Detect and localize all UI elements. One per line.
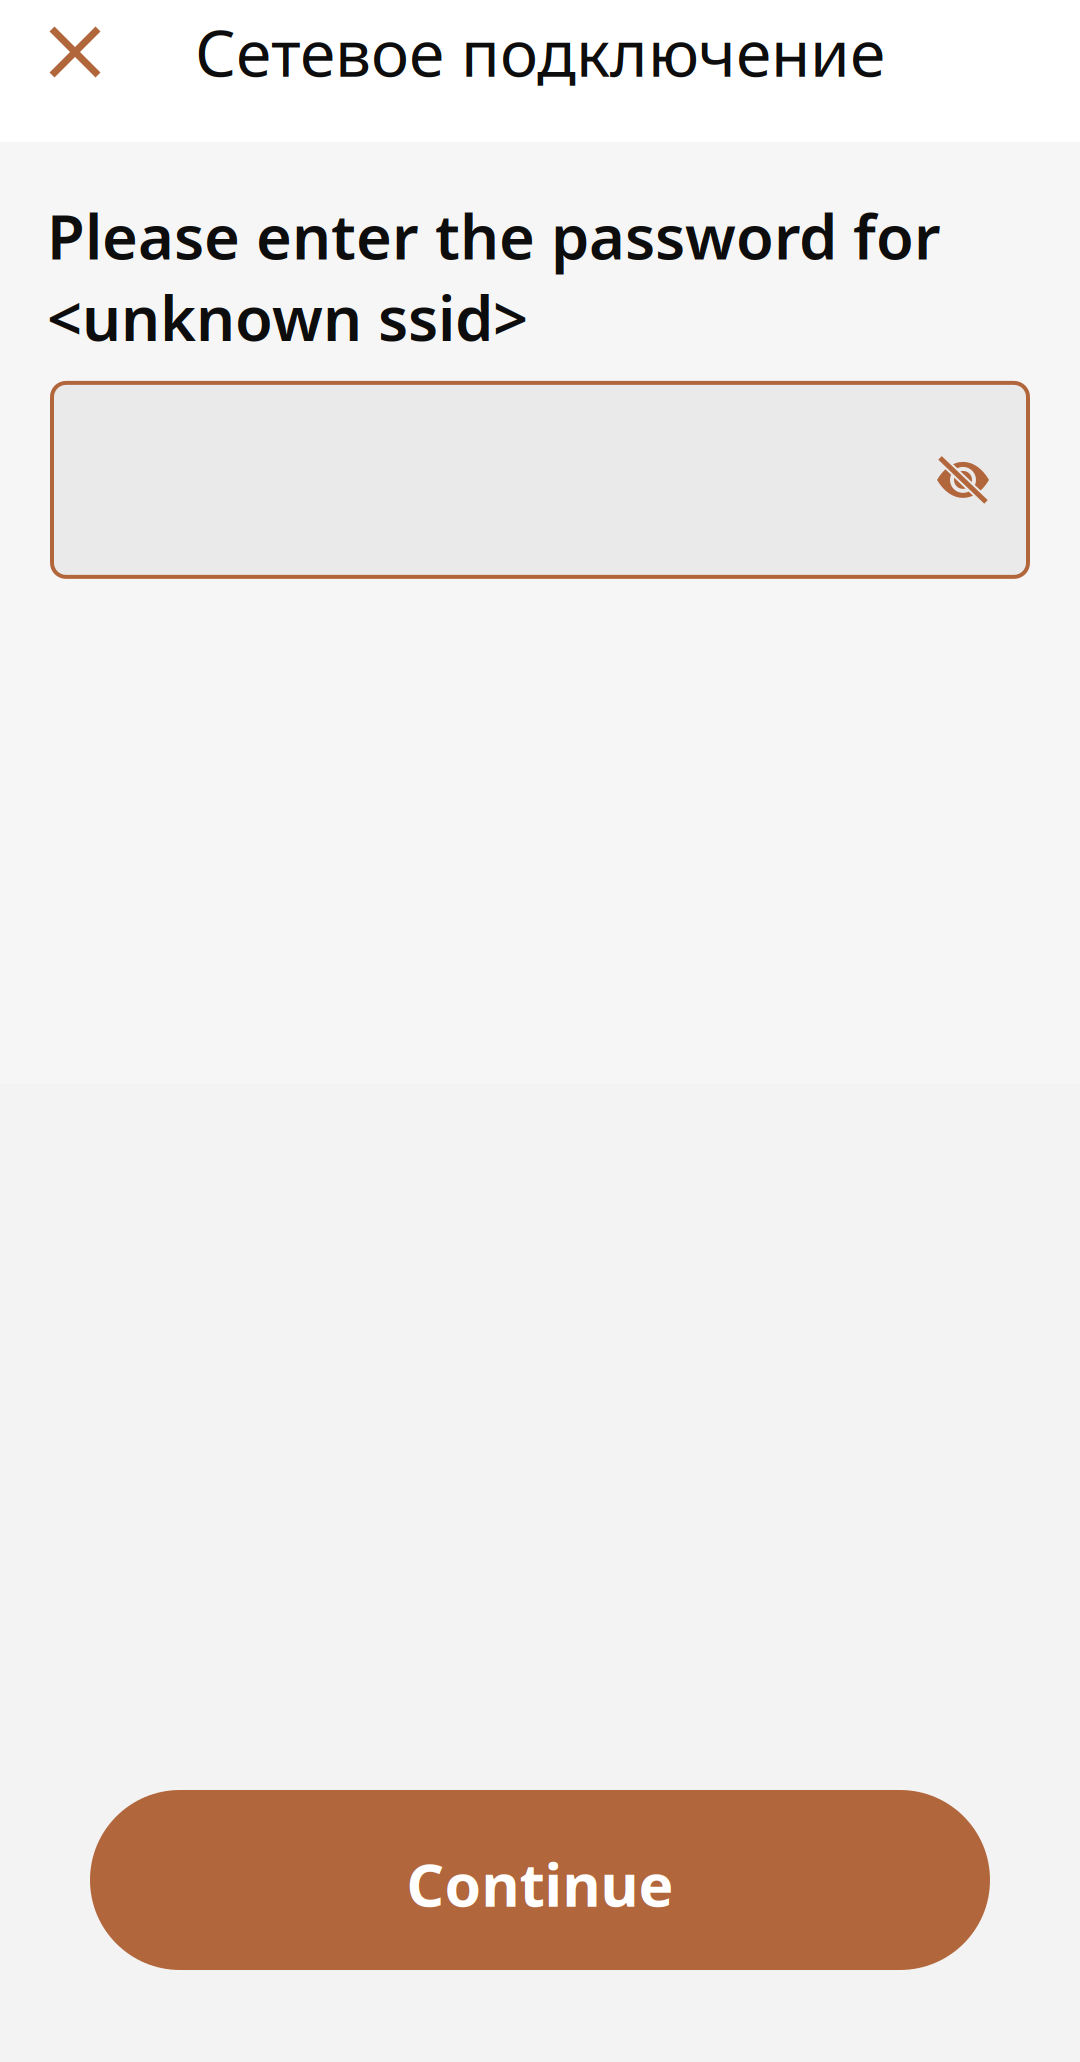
staticText: Сетевое подключение (195, 9, 885, 94)
staticText: Please enter the password for <unknown s… (47, 195, 941, 358)
button[interactable]: Show password (898, 383, 1028, 577)
button[interactable]: Close (0, 0, 150, 104)
staticText: Continue (406, 1845, 673, 1923)
button[interactable]: Continue (90, 1790, 990, 1970)
